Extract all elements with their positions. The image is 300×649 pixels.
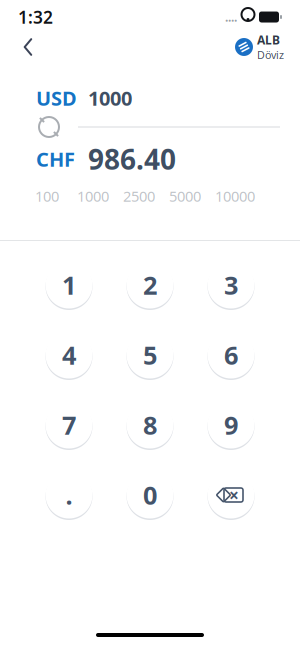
button[interactable]: 3 xyxy=(205,259,257,311)
button[interactable]: Back xyxy=(8,30,48,64)
button[interactable]: 4 xyxy=(43,329,95,381)
staticText: 1 xyxy=(62,268,76,302)
staticText: 7 xyxy=(62,408,76,442)
staticText: 1:32 xyxy=(18,5,53,28)
button[interactable]: 0 xyxy=(124,469,176,521)
button[interactable]: Swap currencies xyxy=(32,110,66,144)
staticText: . xyxy=(65,478,72,512)
button[interactable]: USD xyxy=(36,85,88,111)
button[interactable]: 9 xyxy=(205,399,257,451)
button[interactable]: 8 xyxy=(124,399,176,451)
staticText: ALB xyxy=(257,32,280,48)
staticText: 1000 xyxy=(77,186,109,206)
button[interactable]: Delete xyxy=(205,469,257,521)
staticText: 100 xyxy=(35,186,59,206)
staticText: 6 xyxy=(224,338,238,372)
staticText: 986.40 xyxy=(88,140,176,178)
button[interactable]: 100 xyxy=(35,186,59,206)
staticText: 3 xyxy=(224,268,238,302)
staticText: 5 xyxy=(143,338,157,372)
button[interactable]: 10000 xyxy=(215,186,255,206)
staticText: CHF xyxy=(36,146,75,172)
staticText: 10000 xyxy=(215,186,255,206)
staticText: 1000 xyxy=(88,85,132,111)
staticText: Döviz xyxy=(257,48,284,62)
staticText: USD xyxy=(36,85,77,111)
button[interactable]: ALB Döviz xyxy=(235,32,292,62)
staticText: 2500 xyxy=(123,186,155,206)
staticText: 0 xyxy=(143,478,157,512)
button[interactable]: 2500 xyxy=(123,186,155,206)
button[interactable]: 1000 xyxy=(77,186,109,206)
staticText: × xyxy=(229,483,239,506)
button[interactable]: 6 xyxy=(205,329,257,381)
button[interactable]: 2 xyxy=(124,259,176,311)
button[interactable]: 1 xyxy=(43,259,95,311)
button[interactable]: 7 xyxy=(43,399,95,451)
button[interactable]: . xyxy=(43,469,95,521)
button[interactable]: 5000 xyxy=(169,186,201,206)
button[interactable]: CHF xyxy=(36,146,88,172)
staticText: 8 xyxy=(143,408,157,442)
staticText: 9 xyxy=(224,408,238,442)
staticText: .... xyxy=(225,9,237,25)
staticText: 2 xyxy=(143,268,157,302)
staticText: 4 xyxy=(62,338,76,372)
button[interactable]: 5 xyxy=(124,329,176,381)
staticText: 5000 xyxy=(169,186,201,206)
